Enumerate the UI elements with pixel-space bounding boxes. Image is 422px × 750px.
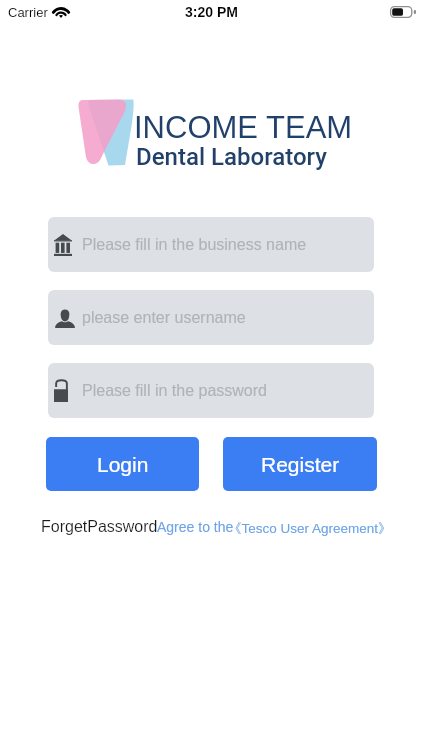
button[interactable]: ForgetPassword bbox=[41, 518, 158, 536]
staticText: Login bbox=[97, 453, 149, 476]
staticText: please enter username bbox=[82, 309, 246, 327]
staticText: Please fill in the password bbox=[82, 382, 267, 400]
staticText: Agree to the bbox=[157, 519, 234, 535]
button[interactable]: Register bbox=[223, 437, 377, 491]
button[interactable]: 《Tesco User Agreement》 bbox=[228, 520, 392, 537]
staticText: Register bbox=[261, 453, 340, 476]
staticText: Carrier bbox=[8, 5, 48, 20]
staticText: 3:20 PM bbox=[185, 4, 238, 20]
staticText: Please fill in the business name bbox=[82, 236, 307, 254]
button[interactable]: Login bbox=[46, 437, 199, 491]
button[interactable]: Business name bbox=[48, 217, 374, 272]
button[interactable]: Password bbox=[48, 363, 374, 418]
button[interactable]: Username bbox=[48, 290, 374, 345]
staticText: Dental Laboratory bbox=[136, 143, 327, 171]
staticText: INCOME TEAM bbox=[134, 110, 353, 145]
